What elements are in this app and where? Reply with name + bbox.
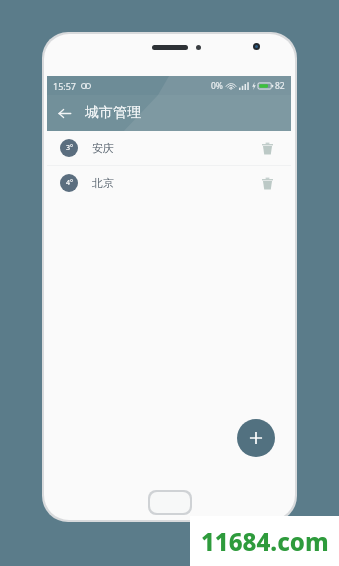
staticText: 3° <box>66 143 73 153</box>
staticText: 0% <box>211 80 223 92</box>
staticText: 82 <box>275 80 285 92</box>
button[interactable]: Delete 北京 <box>254 170 280 196</box>
staticText: 城市管理 <box>85 104 141 122</box>
staticText: 北京 <box>92 176 114 190</box>
button[interactable]: 4° <box>47 166 291 200</box>
button[interactable]: 3° <box>47 131 291 165</box>
staticText: 11684.com <box>201 525 329 558</box>
staticText: 安庆 <box>92 141 114 155</box>
button[interactable]: Add city <box>237 419 275 457</box>
staticText: 15:57 <box>53 80 77 92</box>
button[interactable]: Back <box>47 95 81 131</box>
button[interactable]: Delete 安庆 <box>254 135 280 161</box>
button[interactable]: Home <box>148 490 192 515</box>
staticText: 4° <box>66 178 73 188</box>
